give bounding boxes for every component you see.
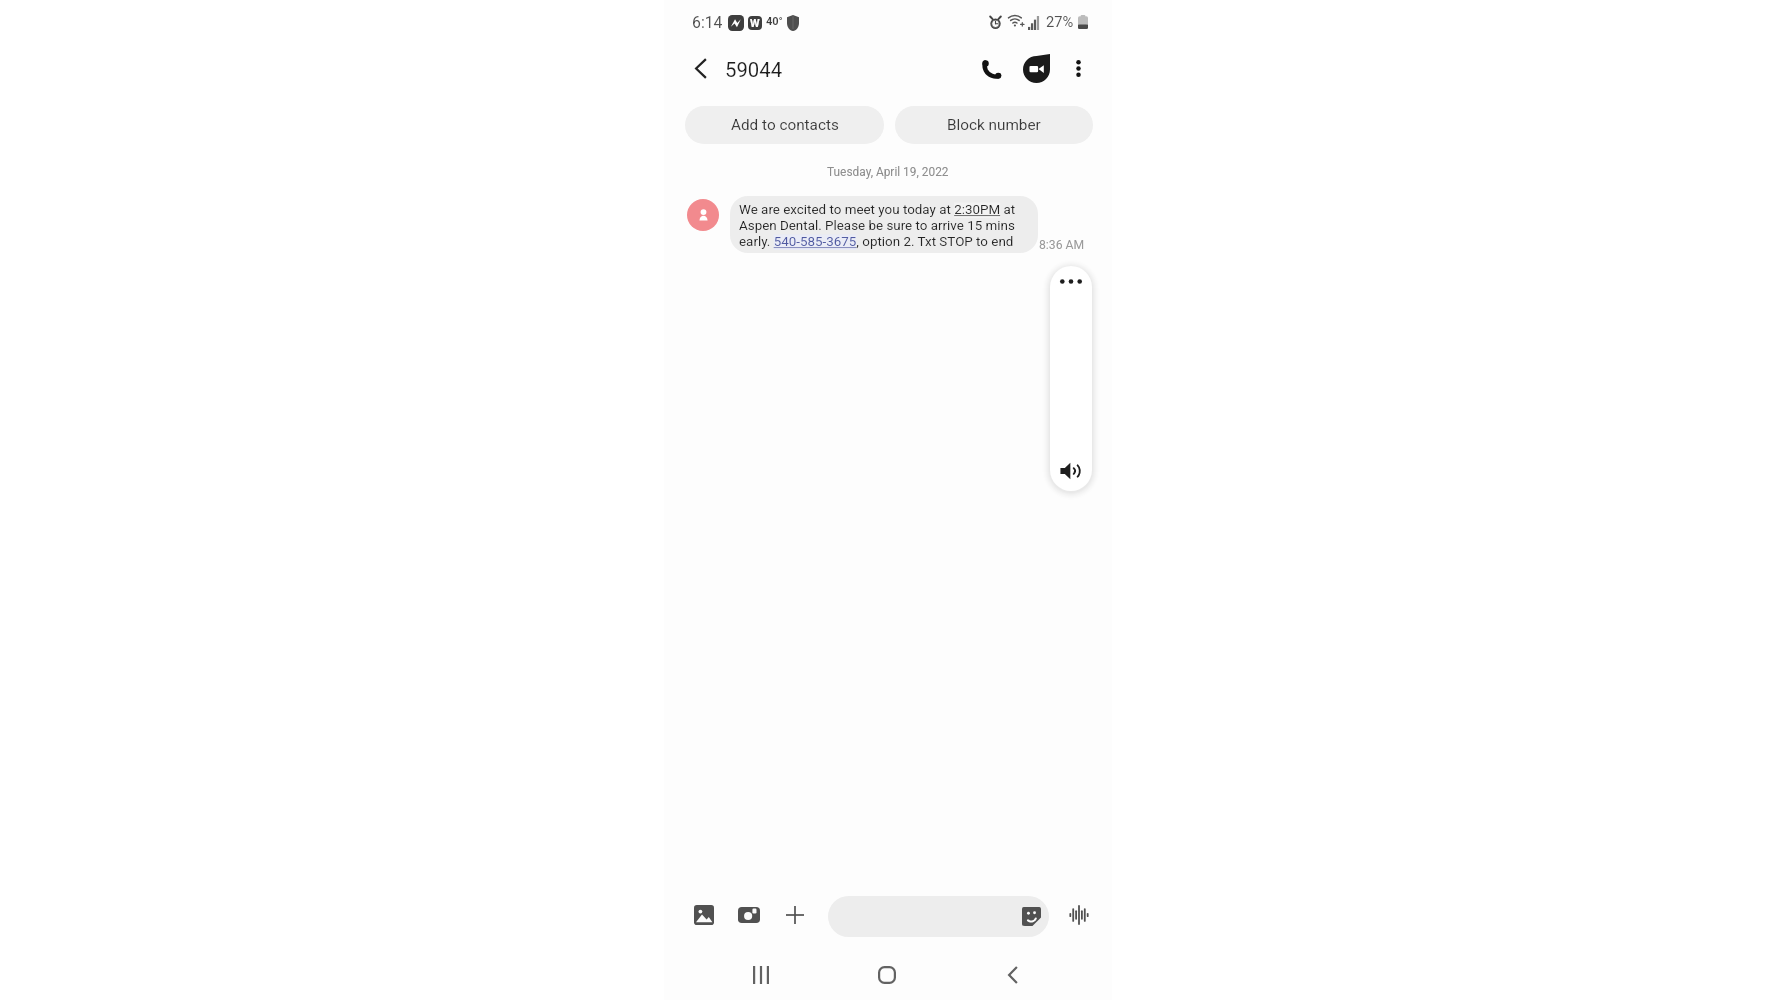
button[interactable]: Block number [895, 106, 1093, 144]
button[interactable]: Call controls [1050, 266, 1092, 491]
button[interactable]: Recents [739, 953, 783, 997]
staticText: 8:36 AM [1039, 238, 1085, 252]
staticText: We are excited to meet you today at 2:30… [739, 202, 1029, 250]
staticText: 40° [766, 15, 783, 28]
button[interactable]: More options [1055, 46, 1099, 90]
button[interactable]: Call [969, 46, 1013, 90]
staticText: Add to contacts [731, 116, 839, 134]
button[interactable] [828, 896, 1049, 937]
button[interactable]: Back [678, 46, 722, 90]
button[interactable]: Gallery [684, 895, 724, 935]
staticText: 59044 [725, 58, 783, 82]
staticText: Tuesday, April 19, 2022 [827, 165, 949, 179]
button[interactable]: Add attachment [775, 895, 815, 935]
staticText: W [750, 17, 760, 30]
button[interactable]: Voice message [1059, 895, 1099, 935]
button[interactable]: Camera [729, 895, 769, 935]
button[interactable]: Add to contacts [685, 106, 884, 144]
button[interactable]: Back [991, 953, 1035, 997]
staticText: 27% [1046, 13, 1074, 30]
button[interactable]: Video call [1023, 54, 1050, 83]
button[interactable]: Home [865, 953, 909, 997]
staticText: Block number [947, 116, 1041, 134]
button[interactable]: We are excited to meet you today at 2:30… [730, 196, 1038, 253]
staticText: 6:14 [692, 13, 723, 32]
